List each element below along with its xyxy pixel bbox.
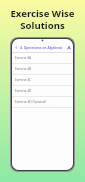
button[interactable]: Account xyxy=(66,45,71,50)
button[interactable]: Back xyxy=(14,45,19,50)
staticText: Exercise 4D xyxy=(15,89,32,93)
staticText: Exercise 4C xyxy=(15,78,32,82)
staticText: Exercise 4A xyxy=(15,56,32,60)
staticText: 4. Operations on Algebraic xyxy=(20,45,63,49)
button[interactable]: Exercise 4C xyxy=(12,75,73,86)
button[interactable]: Exercise 4D xyxy=(12,86,73,97)
staticText: Exercise Wise Solutions xyxy=(10,7,75,31)
button[interactable]: Exercise 4A xyxy=(12,53,73,64)
staticText: Exercise 4E (Optional) xyxy=(15,100,46,104)
staticText: Exercise 4B xyxy=(15,67,32,71)
button[interactable]: Exercise 4B xyxy=(12,64,73,75)
button[interactable]: Exercise 4E (Optional) xyxy=(12,97,73,108)
